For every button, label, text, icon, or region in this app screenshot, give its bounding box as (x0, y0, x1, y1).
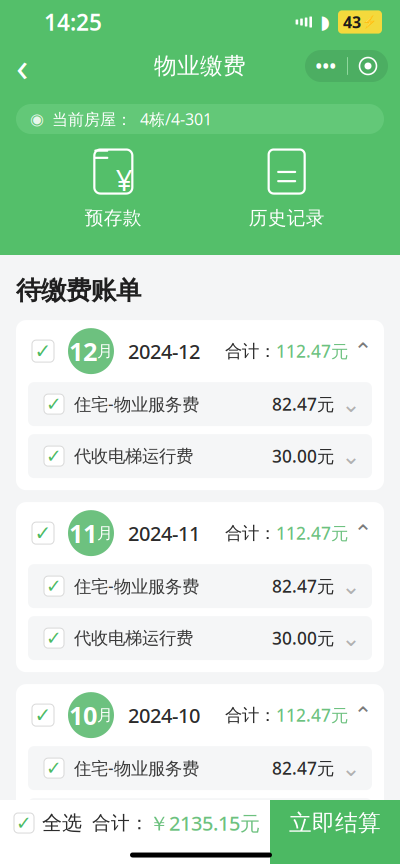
staticText: 112.47元 (276, 704, 348, 727)
staticText: 住宅-物业服务费 (74, 393, 199, 416)
button[interactable]: ✓ (28, 616, 372, 660)
staticText: 82.47元 (272, 757, 334, 780)
staticText: 12 (69, 334, 97, 368)
staticText: 112.47元 (276, 522, 348, 545)
button[interactable]: ✓ (16, 320, 384, 382)
staticText: 43 (343, 11, 361, 33)
staticText: 住宅-物业服务费 (74, 757, 199, 780)
staticText: ✓ (46, 627, 62, 649)
staticText: ✓ (34, 704, 51, 726)
staticText: 合计： (225, 340, 276, 362)
staticText: 月 (97, 341, 113, 361)
staticText: 82.47元 (272, 393, 334, 416)
staticText: 代收电梯运行费 (74, 627, 193, 649)
staticText: 待缴费账单 (16, 275, 141, 306)
staticText: ✓ (34, 340, 51, 362)
button[interactable]: ✓ (28, 434, 372, 478)
staticText: ⌃ (353, 338, 372, 364)
staticText: 14:25 (44, 7, 102, 37)
staticText: 30.00元 (272, 809, 334, 832)
button[interactable]: 历史记录 (227, 142, 347, 234)
staticText: 预存款 (85, 206, 142, 229)
staticText: 物业缴费 (154, 52, 246, 80)
staticText: ✓ (34, 522, 51, 544)
staticText: 代收电梯运行费 (74, 809, 193, 831)
staticText: ⌄ (341, 573, 360, 599)
button[interactable]: 立即结算 (270, 800, 400, 846)
button[interactable]: ✓ (28, 382, 372, 426)
staticText: 当前房屋： 4栋/4-301 (52, 108, 212, 130)
button[interactable]: ✓ (0, 800, 82, 846)
staticText: ◗ (320, 11, 330, 33)
staticText: ⌄ (341, 625, 360, 651)
staticText: 合计： (225, 522, 276, 544)
button[interactable]: ✓ (28, 798, 372, 842)
staticText: ⌃ (353, 702, 372, 728)
button[interactable]: ✓ (16, 502, 384, 564)
staticText: ⌄ (341, 391, 360, 417)
staticText: ✓ (46, 393, 62, 415)
staticText: 代收电梯运行费 (74, 445, 193, 467)
button[interactable]: Close mini program (348, 50, 388, 82)
staticText: ￥2135.15元 (149, 810, 260, 836)
staticText: 住宅-物业服务费 (74, 575, 199, 598)
staticText: ••• (315, 54, 336, 77)
staticText: 82.47元 (272, 575, 334, 598)
staticText: ✓ (46, 809, 62, 831)
staticText: 月 (97, 705, 113, 725)
staticText: ⚡ (362, 15, 377, 29)
staticText: 10 (69, 698, 97, 732)
staticText: ⌄ (341, 443, 360, 469)
staticText: 立即结算 (289, 809, 381, 837)
button[interactable]: More (305, 50, 347, 82)
staticText: 全选 (42, 811, 82, 835)
staticText: 30.00元 (272, 627, 334, 650)
staticText: 2024-11 (128, 520, 200, 546)
staticText: ⌄ (341, 755, 360, 781)
staticText: ¥ (116, 160, 133, 199)
staticText: ✓ (46, 575, 62, 597)
staticText: 月 (97, 523, 113, 543)
button[interactable]: ✓ (16, 684, 384, 746)
staticText: ✓ (46, 757, 62, 779)
staticText: ✓ (46, 445, 62, 467)
staticText: 合计： (225, 704, 276, 726)
button[interactable]: ◉ (16, 104, 384, 134)
staticText: 112.47元 (276, 340, 348, 363)
button[interactable]: ✓ (28, 746, 372, 790)
button[interactable]: Back (0, 44, 44, 88)
staticText: 2024-10 (128, 702, 200, 728)
staticText: ✓ (16, 812, 32, 834)
staticText: 历史记录 (249, 206, 325, 229)
staticText: ⌃ (353, 520, 372, 546)
staticText: 合计： (92, 811, 149, 834)
staticText: 30.00元 (272, 445, 334, 468)
staticText: ◉ (30, 110, 44, 128)
staticText: ⌄ (341, 807, 360, 833)
staticText: 11 (69, 516, 97, 550)
button[interactable]: ¥ (53, 142, 173, 234)
button[interactable]: ✓ (28, 564, 372, 608)
staticText: ‹ (16, 39, 28, 92)
staticText: 2024-12 (128, 338, 200, 364)
